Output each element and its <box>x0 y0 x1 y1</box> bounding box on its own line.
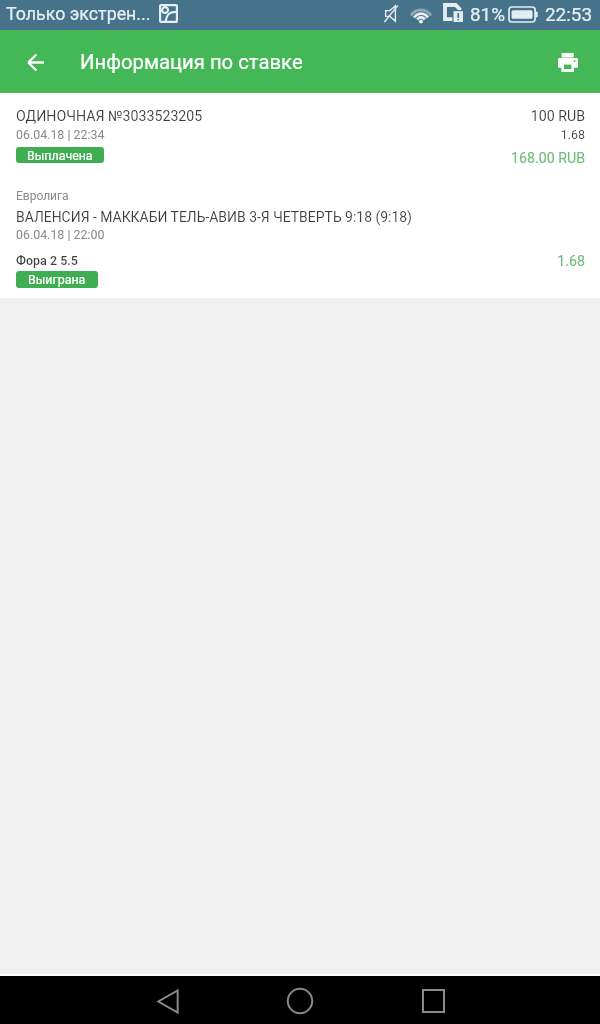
staticText: 81% <box>470 3 506 25</box>
button[interactable]: Выиграна <box>16 271 98 288</box>
staticText: Информация по ставке <box>80 50 303 74</box>
staticText: Евролига <box>16 189 69 203</box>
staticText: Выиграна <box>28 272 86 287</box>
staticText: 22:53 <box>545 3 593 25</box>
staticText: ОДИНОЧНАЯ №3033523205 <box>16 108 203 125</box>
staticText: Выплачена <box>27 148 93 163</box>
staticText: ВАЛЕНСИЯ - МАККАБИ ТЕЛЬ-АВИВ 3-Я ЧЕТВЕРТ… <box>16 209 412 225</box>
staticText: 06.04.18 | 22:00 <box>16 227 105 242</box>
staticText: Только экстрен... <box>6 3 151 24</box>
button[interactable]: Back <box>138 979 198 1023</box>
staticText: 100 RUB <box>530 108 585 125</box>
button[interactable]: Recent apps <box>403 979 463 1023</box>
button[interactable]: Выплачена <box>16 147 104 163</box>
staticText: 1.68 <box>557 253 585 270</box>
staticText: 06.04.18 | 22:34 <box>16 127 105 142</box>
button[interactable]: Home <box>270 979 330 1023</box>
button[interactable]: Back <box>11 38 59 86</box>
staticText: 1.68 <box>560 127 585 142</box>
staticText: 168.00 RUB <box>511 150 585 167</box>
staticText: Фора 2 5.5 <box>16 253 78 268</box>
button[interactable]: Print <box>544 38 592 86</box>
